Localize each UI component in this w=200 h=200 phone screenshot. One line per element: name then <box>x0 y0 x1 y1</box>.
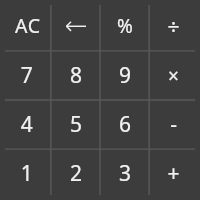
staticText: 5 <box>69 110 82 139</box>
button[interactable]: 8 <box>50 50 100 100</box>
staticText: ÷ <box>167 13 180 42</box>
staticText: % <box>117 13 133 39</box>
staticText: 7 <box>20 61 33 90</box>
staticText: 4 <box>20 110 33 139</box>
button[interactable]: 5 <box>50 100 100 150</box>
staticText: 8 <box>69 61 82 90</box>
button[interactable]: 6 <box>100 100 150 150</box>
button[interactable]: 9 <box>100 50 150 100</box>
button[interactable]: 4 <box>1 100 51 150</box>
button[interactable]: AC <box>1 1 51 51</box>
button[interactable]: 7 <box>1 50 51 100</box>
button[interactable]: + <box>149 149 199 199</box>
button[interactable]: 2 <box>50 149 100 199</box>
staticText: - <box>170 110 177 139</box>
staticText: 1 <box>20 159 33 188</box>
button[interactable]: Backspace <box>50 1 100 51</box>
staticText: × <box>168 63 179 89</box>
button[interactable]: - <box>149 100 199 150</box>
staticText: AC <box>14 12 41 39</box>
staticText: 9 <box>119 61 132 90</box>
button[interactable]: 1 <box>1 149 51 199</box>
button[interactable]: ÷ <box>149 1 199 51</box>
staticText: 6 <box>119 110 132 139</box>
staticText: + <box>167 159 180 188</box>
button[interactable]: 3 <box>100 149 150 199</box>
staticText: 2 <box>69 159 82 188</box>
staticText: 3 <box>119 159 132 188</box>
button[interactable]: % <box>100 1 150 51</box>
button[interactable]: × <box>149 50 199 100</box>
